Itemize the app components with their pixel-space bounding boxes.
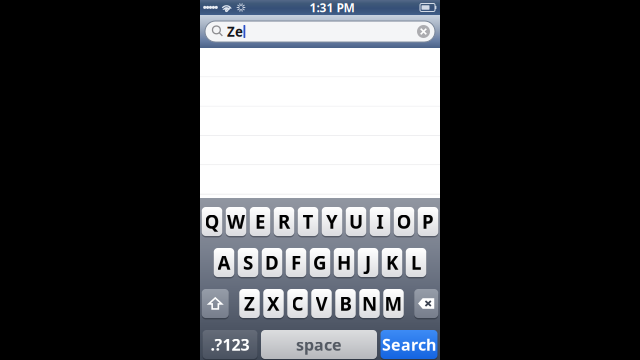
staticText: D [265, 250, 279, 275]
button[interactable]: Search [380, 330, 437, 359]
staticText: N [362, 291, 377, 316]
staticText: M [384, 291, 402, 316]
staticText: I [376, 209, 383, 234]
staticText: B [339, 291, 351, 316]
button[interactable]: N [359, 289, 380, 318]
button[interactable]: Delete [414, 289, 438, 318]
button[interactable]: H [334, 248, 354, 277]
button[interactable]: P [418, 207, 438, 236]
button[interactable]: B [335, 289, 356, 318]
staticText: J [365, 250, 371, 275]
button[interactable]: V [311, 289, 332, 318]
button[interactable]: Shift [202, 289, 229, 318]
staticText: G [313, 250, 327, 275]
staticText: S [243, 250, 253, 275]
staticText: H [337, 250, 351, 275]
button[interactable]: X [263, 289, 284, 318]
button[interactable]: O [394, 207, 414, 236]
button[interactable]: D [262, 248, 282, 277]
staticText: F [291, 250, 301, 275]
staticText: V [315, 291, 327, 316]
button[interactable]: R [274, 207, 294, 236]
button[interactable]: W [226, 207, 246, 236]
button[interactable]: F [286, 248, 306, 277]
staticText: L [411, 250, 421, 275]
staticText: .?123 [210, 334, 249, 355]
button[interactable]: Z [239, 289, 260, 318]
staticText: W [227, 209, 245, 234]
button[interactable]: L [406, 248, 426, 277]
staticText: O [396, 209, 411, 234]
button[interactable]: .?123 [202, 330, 257, 359]
button[interactable]: A [214, 248, 234, 277]
button[interactable]: J [358, 248, 378, 277]
staticText: E [255, 209, 265, 234]
button[interactable]: I [370, 207, 390, 236]
staticText: Search [382, 334, 436, 355]
staticText: Ze [227, 23, 243, 40]
button[interactable]: S [238, 248, 258, 277]
staticText: C [291, 291, 303, 316]
staticText: K [386, 250, 398, 275]
staticText: R [278, 209, 290, 234]
staticText: space [296, 334, 342, 355]
button[interactable]: C [287, 289, 308, 318]
staticText: Y [326, 209, 338, 234]
staticText: U [349, 209, 363, 234]
button[interactable]: M [383, 289, 404, 318]
button[interactable]: T [298, 207, 318, 236]
staticText: 1:31 PM [309, 0, 354, 15]
button[interactable]: space [261, 330, 377, 359]
button[interactable]: Q [202, 207, 222, 236]
button[interactable]: Ze [205, 21, 435, 42]
staticText: A [217, 250, 230, 275]
button[interactable]: E [250, 207, 270, 236]
staticText: P [422, 209, 434, 234]
button[interactable]: K [382, 248, 402, 277]
staticText: X [267, 291, 280, 316]
button[interactable]: G [310, 248, 330, 277]
staticText: Q [204, 209, 219, 234]
button[interactable]: U [346, 207, 366, 236]
staticText: T [302, 209, 313, 234]
staticText: Z [244, 291, 255, 316]
button[interactable]: Y [322, 207, 342, 236]
